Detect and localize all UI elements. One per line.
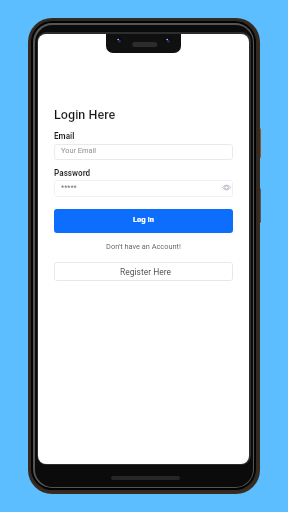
- staticText: Your Email: [61, 146, 97, 155]
- staticText: Login Here: [54, 107, 116, 122]
- staticText: Email: [54, 131, 75, 141]
- staticText: *****: [61, 183, 77, 192]
- staticText: Register Here: [120, 267, 172, 277]
- staticText: Don't have an Account!: [54, 242, 233, 251]
- button[interactable]: Register Here: [54, 262, 233, 281]
- other: Show password: [222, 184, 231, 191]
- button[interactable]: Your Email: [54, 144, 233, 160]
- staticText: Log In: [133, 215, 154, 224]
- button[interactable]: Log In: [54, 209, 233, 233]
- button[interactable]: *****: [54, 180, 233, 197]
- staticText: Password: [54, 168, 91, 178]
